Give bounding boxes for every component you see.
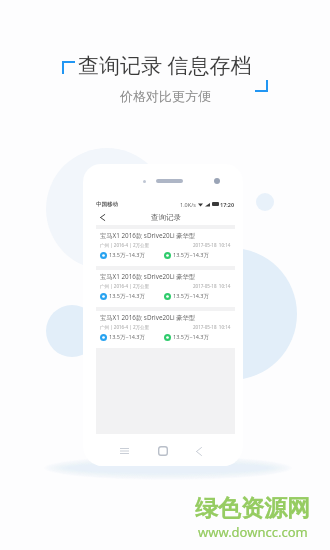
staticText: 2017-05-18 10:14 bbox=[193, 283, 231, 289]
staticText: 查询记录 bbox=[151, 213, 181, 222]
staticText: 广州 | 2016-4 | 2万公里 bbox=[100, 324, 150, 330]
staticText: 2017-05-18 10:14 bbox=[193, 324, 231, 330]
button[interactable]: Home bbox=[153, 441, 173, 461]
staticText: www.downcc.com bbox=[198, 523, 308, 541]
staticText: 广州 | 2016-4 | 2万公里 bbox=[100, 283, 150, 289]
button[interactable]: 宝马X1 2016款 sDrive20Li 豪华型 bbox=[96, 270, 235, 307]
staticText: 13.5万~14.3万 bbox=[173, 292, 209, 300]
staticText: 17:20 bbox=[220, 201, 235, 208]
staticText: 查询记录 信息存档 bbox=[78, 51, 252, 80]
button[interactable]: Back bbox=[96, 211, 109, 224]
button[interactable]: Recent apps bbox=[114, 441, 134, 461]
staticText: 13.5万~14.3万 bbox=[173, 251, 209, 259]
staticText: 13.5万~14.3万 bbox=[109, 251, 145, 259]
staticText: 2017-05-18 10:14 bbox=[193, 242, 231, 248]
button[interactable]: Back bbox=[189, 441, 209, 461]
staticText: 宝马X1 2016款 sDrive20Li 豪华型 bbox=[100, 313, 196, 322]
staticText: 宝马X1 2016款 sDrive20Li 豪华型 bbox=[100, 231, 196, 240]
staticText: 1.0K/s bbox=[180, 201, 196, 208]
staticText: 中国移动 bbox=[96, 201, 118, 208]
button[interactable]: 宝马X1 2016款 sDrive20Li 豪华型 bbox=[96, 311, 235, 348]
staticText: 广州 | 2016-4 | 2万公里 bbox=[100, 242, 150, 248]
staticText: 13.5万~14.3万 bbox=[109, 333, 145, 341]
staticText: 13.5万~14.3万 bbox=[173, 333, 209, 341]
staticText: 13.5万~14.3万 bbox=[109, 292, 145, 300]
staticText: 宝马X1 2016款 sDrive20Li 豪华型 bbox=[100, 272, 196, 281]
button[interactable]: 宝马X1 2016款 sDrive20Li 豪华型 bbox=[96, 229, 235, 266]
staticText: 绿色资源网 bbox=[195, 494, 310, 523]
staticText: 价格对比更方便 bbox=[120, 88, 211, 104]
